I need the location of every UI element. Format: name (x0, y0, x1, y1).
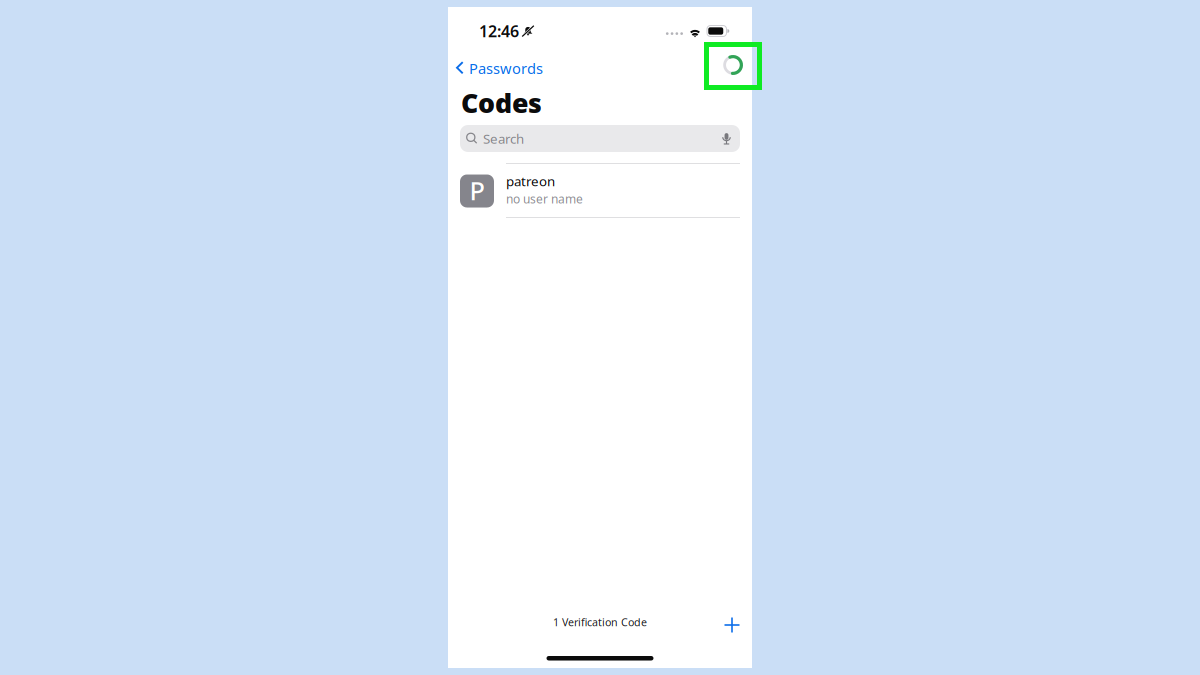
button[interactable]: Sync codes (714, 46, 752, 84)
staticText: 12:46 (479, 20, 519, 42)
staticText: no user name (506, 191, 583, 207)
button[interactable]: Passwords (448, 54, 543, 81)
button[interactable]: Add verification code (717, 610, 747, 640)
button[interactable]: P (448, 164, 752, 218)
staticText: P (469, 174, 484, 207)
button[interactable]: Search (460, 125, 740, 152)
staticText: 1 Verification Code (553, 615, 647, 629)
staticText: Passwords (469, 58, 543, 78)
staticText: patreon (506, 172, 555, 190)
staticText: Search (483, 130, 524, 147)
staticText: Codes (461, 85, 542, 120)
